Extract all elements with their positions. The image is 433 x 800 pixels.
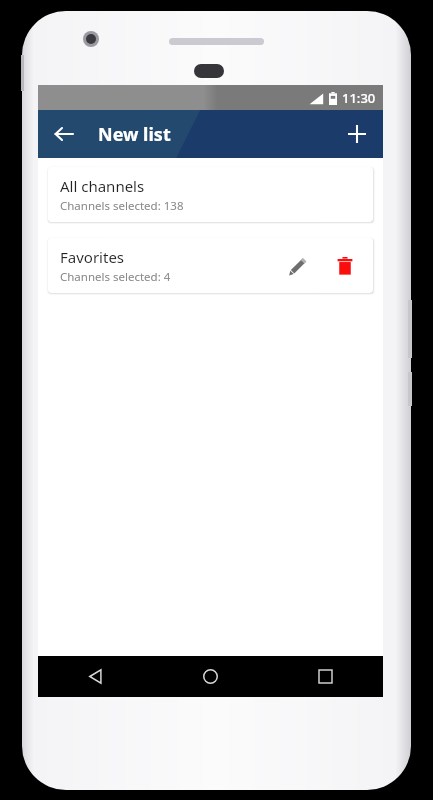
button[interactable]: Favorites bbox=[48, 238, 373, 293]
staticText: Channels selected: 4 bbox=[60, 269, 171, 285]
button[interactable]: Edit bbox=[277, 246, 317, 286]
button[interactable]: Add list bbox=[337, 114, 377, 154]
staticText: New list bbox=[98, 122, 171, 147]
staticText: All channels bbox=[60, 176, 145, 196]
staticText: Favorites bbox=[60, 247, 125, 267]
button[interactable]: Delete bbox=[325, 246, 365, 286]
button[interactable]: All channels bbox=[48, 167, 373, 222]
staticText: 11:30 bbox=[342, 89, 376, 107]
staticText: Channels selected: 138 bbox=[60, 198, 184, 214]
button[interactable]: Recent apps bbox=[268, 656, 383, 697]
button[interactable]: Home bbox=[153, 656, 268, 697]
button[interactable]: Back bbox=[44, 114, 84, 154]
button[interactable]: Back bbox=[38, 656, 153, 697]
